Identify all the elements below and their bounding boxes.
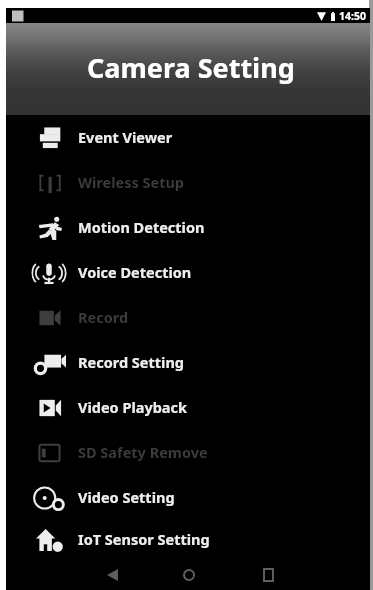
- button[interactable]: Back: [90, 564, 134, 586]
- button[interactable]: Record: [6, 295, 370, 340]
- staticText: Video Setting: [78, 487, 175, 507]
- button[interactable]: Voice Detection: [6, 250, 370, 295]
- staticText: SD Safety Remove: [78, 442, 208, 462]
- staticText: Wireless Setup: [78, 172, 185, 192]
- staticText: Record Setting: [78, 352, 184, 372]
- staticText: Camera Setting: [87, 49, 295, 86]
- button[interactable]: SD Safety Remove: [6, 430, 370, 475]
- staticText: 14:50: [339, 9, 366, 23]
- staticText: Event Viewer: [78, 127, 173, 147]
- button[interactable]: Video Playback: [6, 385, 370, 430]
- button[interactable]: Recent apps: [246, 564, 290, 586]
- button[interactable]: IoT Sensor Setting: [6, 520, 370, 560]
- button[interactable]: Motion Detection: [6, 205, 370, 250]
- staticText: Motion Detection: [78, 217, 205, 237]
- staticText: Video Playback: [78, 397, 188, 417]
- button[interactable]: Video Setting: [6, 475, 370, 520]
- button[interactable]: Home: [167, 564, 211, 586]
- staticText: IoT Sensor Setting: [78, 529, 210, 549]
- button[interactable]: Event Viewer: [6, 115, 370, 160]
- button[interactable]: Wireless Setup: [6, 160, 370, 205]
- staticText: Voice Detection: [78, 262, 192, 282]
- staticText: Record: [78, 307, 129, 327]
- button[interactable]: Record Setting: [6, 340, 370, 385]
